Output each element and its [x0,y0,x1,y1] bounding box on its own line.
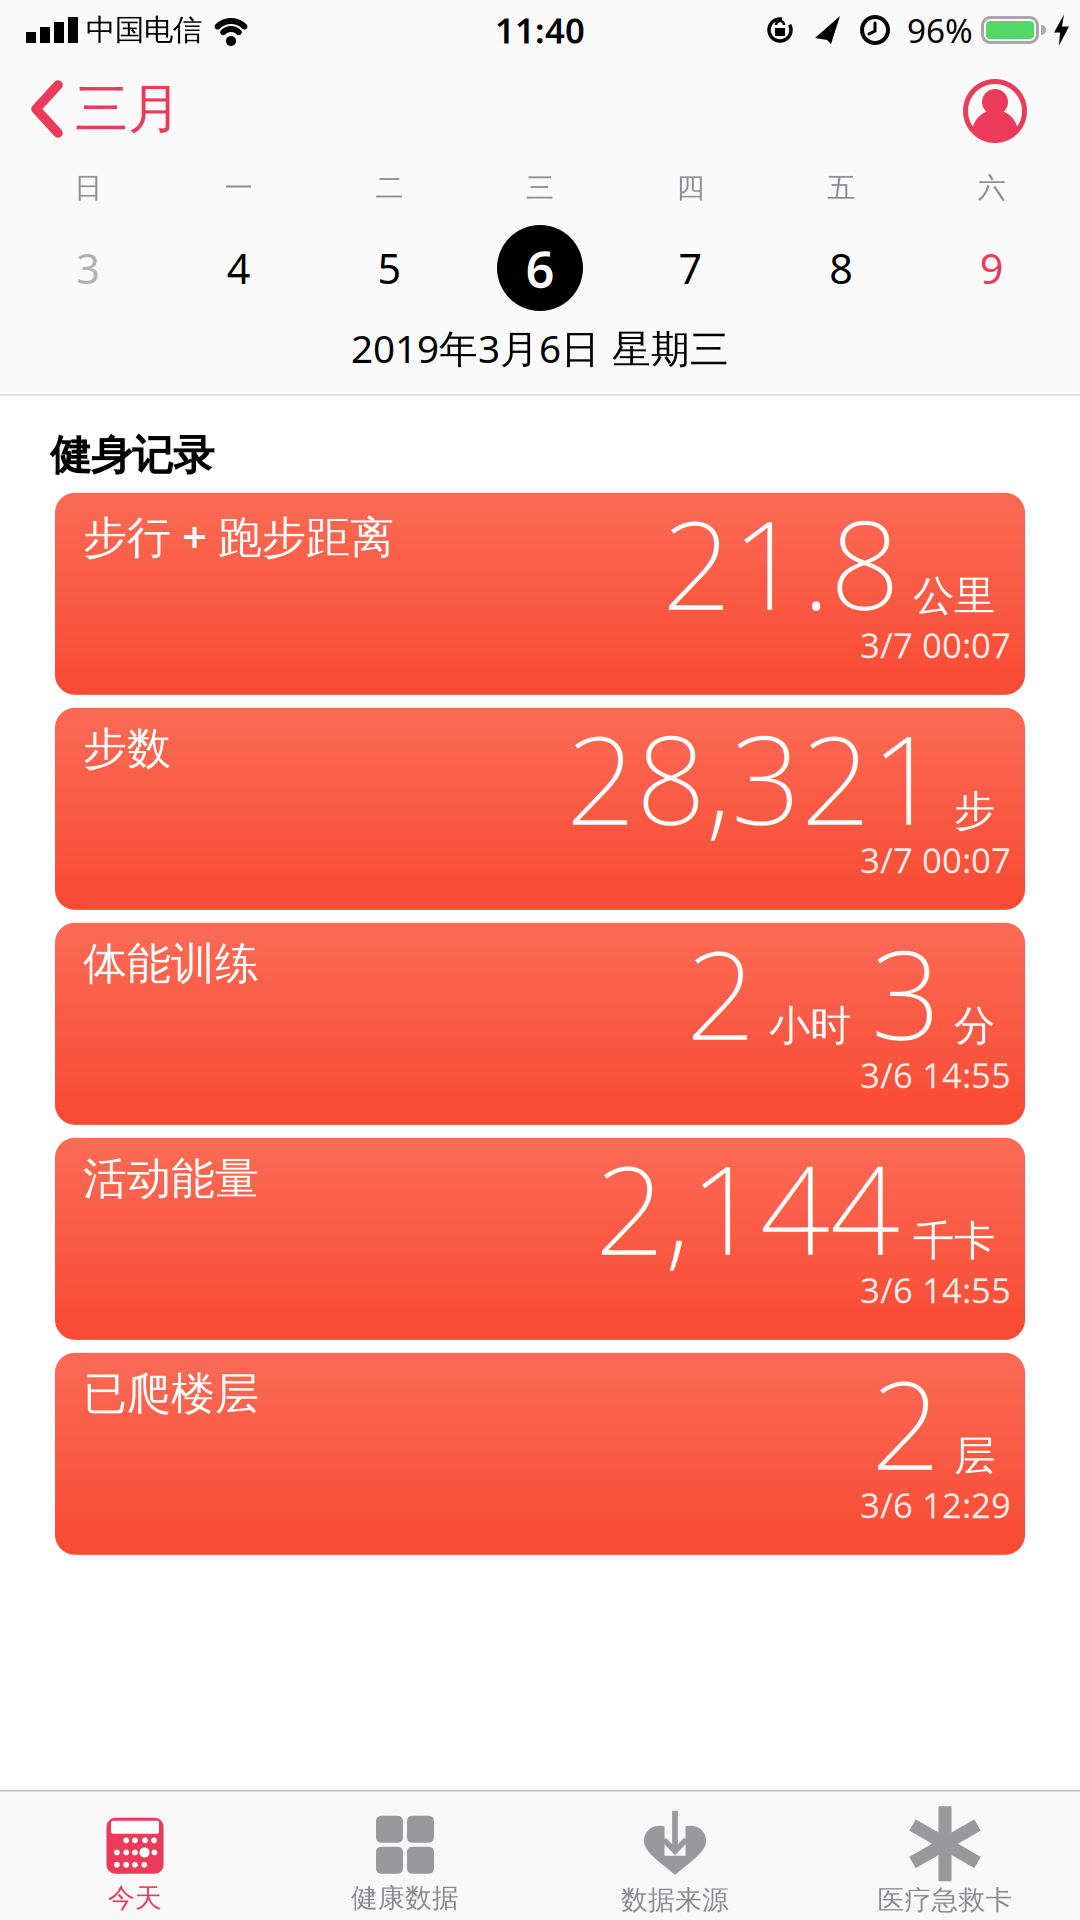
staticText: 21.8 [662,481,900,644]
staticText: 健康数据 [351,1882,459,1915]
staticText: 3/6 14:55 [860,1267,1011,1313]
staticText: 数据来源 [621,1884,729,1917]
staticText: 中国电信 [86,12,202,48]
staticText: 日 [74,171,102,205]
button[interactable]: 活动能量 [55,1138,1025,1340]
staticText: 2019年3月6日 星期三 [351,322,729,374]
staticText: 公里 [913,571,995,621]
button[interactable]: 健康数据 [270,1792,540,1920]
button[interactable]: 数据来源 [540,1792,810,1920]
staticText: 3 [871,911,941,1074]
staticText: 2 [871,1341,941,1504]
button[interactable]: 体能训练 [55,923,1025,1125]
staticText: 2 [686,911,756,1074]
staticText: 96% [907,8,973,52]
button[interactable]: 今天 [0,1792,270,1920]
staticText: 医疗急救卡 [877,1884,1012,1917]
staticText: 五 [827,171,855,205]
staticText: 健身记录 [50,430,214,481]
staticText: 7 [679,241,703,295]
button[interactable]: 3 [13,218,164,318]
staticText: 千卡 [913,1216,995,1266]
staticText: 分 [954,1001,995,1051]
staticText: 3/6 14:55 [860,1052,1011,1098]
staticText: 3 [76,241,100,295]
staticText: 28,321 [566,696,941,859]
staticText: 8 [829,241,853,295]
staticText: 今天 [108,1882,162,1915]
staticText: 5 [377,241,401,295]
staticText: 11:40 [495,7,585,53]
button[interactable]: 医疗急救卡 [810,1792,1080,1920]
staticText: 3/6 12:29 [860,1482,1011,1528]
staticText: 一 [225,171,253,205]
button[interactable]: 4 [164,218,314,318]
button[interactable]: 5 [314,218,465,318]
staticText: 体能训练 [83,937,259,991]
staticText: 四 [677,171,705,205]
staticText: 步 [954,786,995,836]
button[interactable]: 7 [615,218,766,318]
staticText: 9 [980,241,1004,295]
button[interactable]: 9 [916,218,1067,318]
staticText: 步数 [83,722,171,776]
staticText: 六 [978,171,1006,205]
staticText: 已爬楼层 [83,1367,259,1421]
button[interactable]: 已爬楼层 [55,1353,1025,1555]
staticText: 层 [954,1431,995,1481]
button[interactable]: 步行 + 跑步距离 [55,493,1025,695]
staticText: 小时 [769,1001,851,1051]
button[interactable]: 6 [465,218,615,318]
staticText: 2,144 [595,1126,900,1289]
button[interactable]: 8 [766,218,916,318]
button[interactable]: 步数 [55,708,1025,910]
staticText: 3/7 00:07 [860,622,1011,668]
staticText: 活动能量 [83,1152,259,1206]
staticText: 三 [526,171,554,205]
staticText: 二 [375,171,403,205]
staticText: 3/7 00:07 [860,837,1011,883]
button[interactable]: 三月 [0,74,181,140]
staticText: 6 [525,234,554,302]
button[interactable] [983,75,1080,139]
staticText: 4 [227,241,251,295]
staticText: 步行 + 跑步距离 [83,507,394,565]
staticText: 三月 [75,76,181,142]
